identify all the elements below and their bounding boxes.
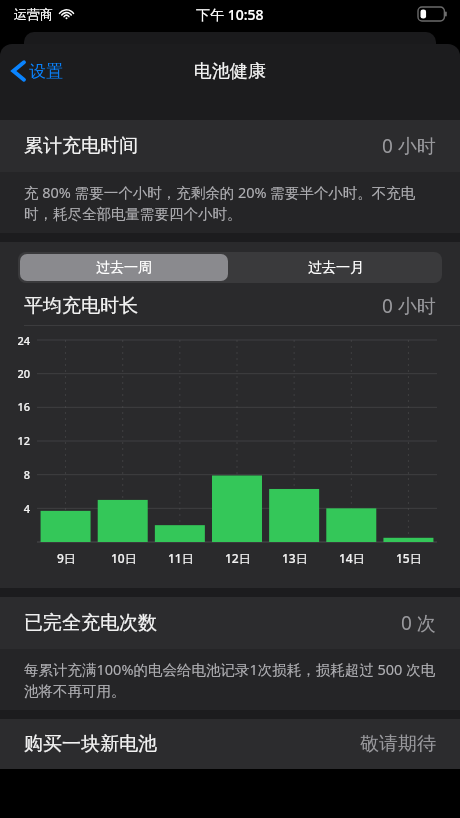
button[interactable]: 设置 — [0, 54, 73, 88]
staticText: 平均充电时长 — [24, 294, 138, 318]
button[interactable]: 购买一块新电池 — [0, 719, 460, 769]
staticText: 13日 — [282, 550, 308, 566]
staticText: 下午 10:58 — [196, 5, 264, 24]
button[interactable]: 过去一周 — [20, 254, 228, 281]
staticText: 20 — [17, 366, 30, 381]
staticText: 每累计充满100%的电会给电池记录1次损耗，损耗超过 500 次电池将不再可用。 — [24, 659, 436, 700]
staticText: 14日 — [339, 550, 365, 566]
staticText: 16 — [17, 399, 30, 414]
staticText: 4 — [23, 501, 30, 516]
staticText: 购买一块新电池 — [24, 732, 157, 756]
staticText: 9日 — [57, 550, 76, 566]
button[interactable]: 过去一月 — [230, 252, 442, 283]
staticText: 电池健康 — [194, 60, 266, 83]
staticText: 充 80% 需要一个小时，充剩余的 20% 需要半个小时。不充电时，耗尽全部电量… — [24, 182, 436, 223]
staticText: 0 小时 — [382, 133, 436, 159]
staticText: 过去一周 — [96, 259, 152, 277]
staticText: 8 — [23, 467, 30, 482]
staticText: 0 次 — [401, 610, 436, 636]
staticText: 12日 — [225, 550, 251, 566]
staticText: 设置 — [29, 61, 63, 82]
staticText: 0 小时 — [382, 293, 436, 319]
staticText: 运营商 — [14, 6, 53, 22]
staticText: 24 — [17, 333, 30, 348]
button[interactable]: 累计充电时间 — [0, 120, 460, 172]
staticText: 11日 — [168, 550, 194, 566]
staticText: 敬请期待 — [360, 732, 436, 756]
staticText: 已完全充电次数 — [24, 611, 157, 635]
staticText: 10日 — [111, 550, 137, 566]
staticText: 15日 — [396, 550, 422, 566]
button[interactable]: 已完全充电次数 — [0, 597, 460, 649]
staticText: 12 — [17, 433, 30, 448]
staticText: 过去一月 — [308, 259, 364, 277]
staticText: 累计充电时间 — [24, 134, 138, 158]
